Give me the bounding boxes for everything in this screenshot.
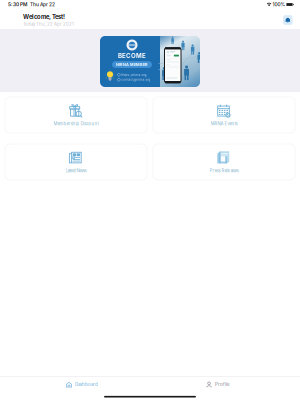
button[interactable]: Profile [164, 377, 272, 392]
button[interactable]: Latest News [5, 144, 147, 180]
staticText: Membership Discount [53, 121, 98, 126]
button[interactable]: Press Releases [153, 144, 295, 180]
staticText: Today Thu, 22 Apr 2021 [23, 22, 74, 27]
staticText: 100% [271, 2, 286, 7]
staticText: contact@nirna.org [121, 78, 150, 81]
button[interactable]: Dashboard [28, 377, 136, 392]
staticText: Press Releases [209, 168, 238, 173]
button[interactable]: Notifications [283, 15, 292, 25]
staticText: NIRNA MEMBER [116, 62, 148, 67]
button[interactable]: NIRNA Events [153, 97, 295, 133]
staticText: BECOME [118, 52, 146, 59]
button[interactable]: Become a NIRNA member [100, 36, 200, 87]
staticText: 5:30 PM [8, 2, 27, 7]
staticText: Welcome, Test! [23, 13, 65, 20]
staticText: Profile [215, 382, 230, 387]
button[interactable]: Membership Discount [5, 97, 147, 133]
staticText: Thu Apr 22 [27, 2, 55, 7]
staticText: Latest News [65, 168, 86, 173]
staticText: https://nirna.org/ [121, 73, 147, 77]
staticText: Dashboard [75, 382, 98, 387]
staticText: NIRNA Events [210, 121, 237, 126]
